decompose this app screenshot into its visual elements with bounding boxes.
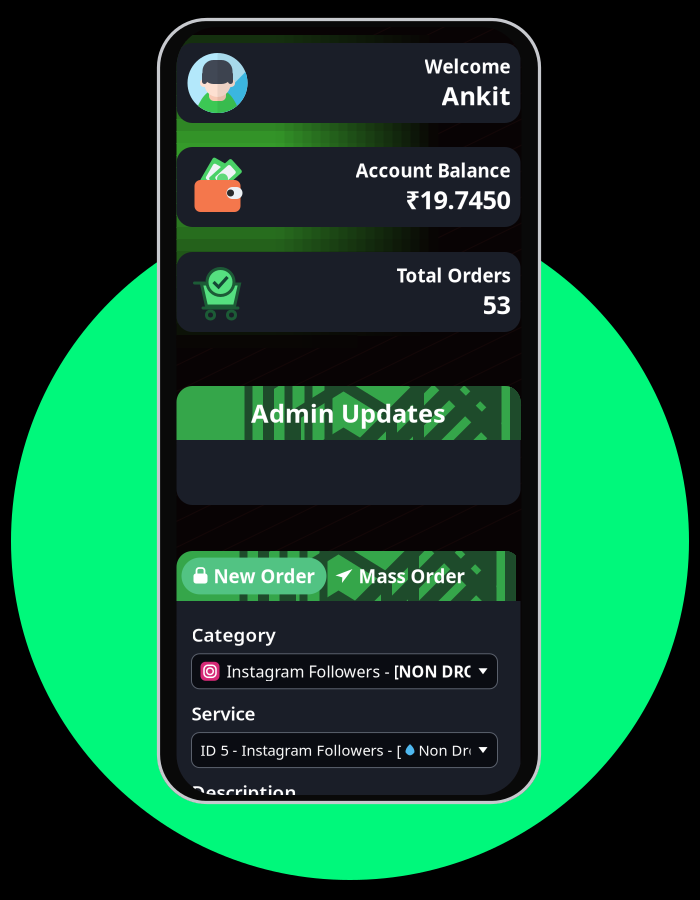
staticText: Total Orders: [396, 263, 510, 288]
button[interactable]: Account Balance: [176, 147, 520, 227]
staticText: 53: [482, 288, 510, 321]
button[interactable]: New Order: [181, 558, 326, 594]
staticText: Welcome: [424, 54, 510, 79]
button[interactable]: Total Orders: [176, 252, 520, 332]
staticText: Admin Updates: [251, 396, 446, 430]
staticText: Mass Order: [358, 564, 464, 588]
staticText: New Order: [213, 564, 314, 588]
button[interactable]: Instagram Followers -: [191, 654, 497, 689]
staticText: Category: [191, 622, 275, 647]
button[interactable]: Welcome: [176, 43, 520, 123]
staticText: Non Drop] - [: [414, 740, 513, 760]
staticText: 30D/…: [524, 740, 572, 760]
button[interactable]: Mass Order: [335, 558, 464, 594]
staticText: Account Balance: [355, 158, 510, 183]
staticText: [NON DROP]: [393, 661, 491, 682]
staticText: Description: [191, 780, 296, 804]
button[interactable]: ID 5 - Instagram Followers - [: [191, 733, 497, 768]
staticText: ID 5 - Instagram Followers - [: [200, 740, 405, 760]
staticText: Ankit: [441, 79, 510, 112]
staticText: ₹19.7450: [405, 183, 510, 216]
staticText: Instagram Followers -: [226, 661, 393, 682]
staticText: Service: [191, 701, 255, 726]
